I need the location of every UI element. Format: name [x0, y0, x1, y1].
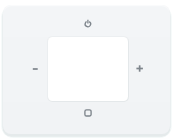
button[interactable]: Increase — [128, 57, 151, 80]
button[interactable]: Decrease — [24, 58, 47, 81]
button[interactable]: Stop — [77, 101, 99, 123]
button[interactable]: Power — [76, 12, 100, 36]
